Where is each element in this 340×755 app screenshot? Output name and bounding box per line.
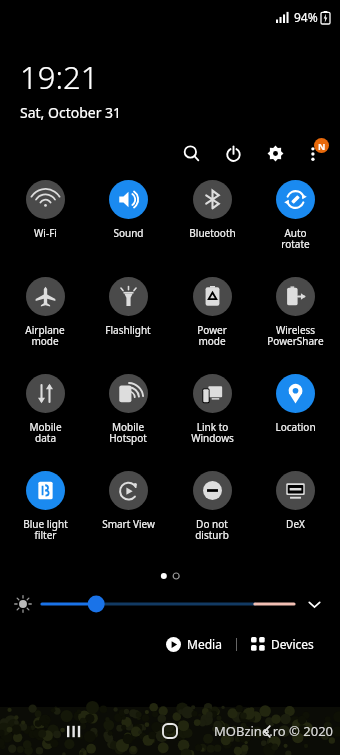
button[interactable]: Smart View bbox=[89, 471, 167, 531]
button[interactable]: Auto rotate bbox=[256, 180, 334, 251]
button[interactable]: Wi-Fi bbox=[6, 180, 84, 240]
button[interactable]: Power mode bbox=[173, 277, 251, 348]
button[interactable]: Settings bbox=[262, 140, 288, 166]
staticText: Bluetooth bbox=[189, 226, 236, 240]
button[interactable]: Devices bbox=[247, 632, 318, 656]
button[interactable]: DeX bbox=[256, 471, 334, 531]
staticText: Airplane mode bbox=[25, 323, 65, 348]
button[interactable]: Do not disturb bbox=[173, 471, 251, 542]
button[interactable]: Wireless PowerShare bbox=[256, 277, 334, 348]
staticText: Smart View bbox=[102, 517, 155, 531]
staticText: Do not disturb bbox=[195, 517, 229, 542]
staticText: Link to Windows bbox=[191, 420, 234, 445]
button[interactable]: Airplane mode bbox=[6, 277, 84, 348]
staticText: Media bbox=[187, 636, 222, 652]
staticText: Devices bbox=[271, 636, 314, 652]
staticText: Location bbox=[275, 420, 316, 434]
staticText: 94% bbox=[294, 9, 318, 25]
staticText: N bbox=[318, 140, 326, 152]
button[interactable]: Sound bbox=[89, 180, 167, 240]
staticText: Auto rotate bbox=[281, 226, 310, 251]
button[interactable]: Link to Windows bbox=[173, 374, 251, 445]
button[interactable]: Power bbox=[220, 140, 246, 166]
staticText: Wireless PowerShare bbox=[267, 323, 324, 348]
button[interactable]: Media bbox=[162, 632, 226, 656]
button[interactable]: Bluetooth bbox=[173, 180, 251, 240]
staticText: Sound bbox=[113, 226, 144, 240]
button[interactable]: Mobile Hotspot bbox=[89, 374, 167, 445]
staticText: Mobile data bbox=[29, 420, 62, 445]
staticText: DeX bbox=[286, 517, 305, 531]
button[interactable]: Location bbox=[256, 374, 334, 434]
button[interactable]: Search bbox=[178, 140, 204, 166]
staticText: Mobile Hotspot bbox=[109, 420, 147, 445]
button[interactable]: Back bbox=[244, 708, 290, 754]
button[interactable]: Home bbox=[147, 708, 193, 754]
staticText: MOBzine.ro © 2020 bbox=[214, 722, 334, 740]
button[interactable]: Flashlight bbox=[89, 277, 167, 337]
staticText: Blue light filter bbox=[23, 517, 68, 542]
staticText: Power mode bbox=[197, 323, 227, 348]
button[interactable]: Mobile data bbox=[6, 374, 84, 445]
button[interactable]: More options bbox=[302, 140, 328, 166]
staticText: Wi-Fi bbox=[34, 226, 57, 240]
staticText: Sat, October 31 bbox=[20, 103, 122, 122]
button[interactable]: Recent apps bbox=[51, 708, 97, 754]
button[interactable]: Expand brightness settings bbox=[302, 592, 326, 616]
staticText: Flashlight bbox=[105, 323, 151, 337]
button[interactable]: Brightness bbox=[42, 591, 294, 617]
staticText: 19:21 bbox=[20, 56, 99, 98]
button[interactable]: Blue light filter bbox=[6, 471, 84, 542]
